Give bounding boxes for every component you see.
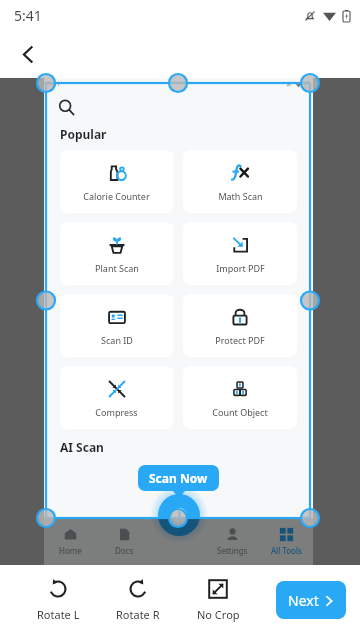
staticText: Next xyxy=(288,591,319,610)
staticText: Popular xyxy=(60,126,107,142)
staticText: 5:41 xyxy=(14,6,42,25)
staticText: Settings xyxy=(217,545,248,556)
button[interactable]: Home xyxy=(44,517,97,565)
staticText: Scan Now xyxy=(149,470,208,486)
button[interactable]: Count Object xyxy=(183,366,297,429)
button[interactable]: Scan xyxy=(158,494,200,536)
staticText: All Tools xyxy=(271,545,302,556)
button[interactable]: No Crop xyxy=(178,578,258,622)
staticText: AI Scan xyxy=(60,439,104,455)
staticText: Plant Scan xyxy=(95,262,139,274)
button[interactable]: Import PDF xyxy=(183,222,297,285)
button[interactable]: Math Scan xyxy=(183,150,297,213)
button[interactable]: Docs xyxy=(97,517,151,565)
staticText: No Crop xyxy=(197,607,240,622)
staticText: Docs xyxy=(115,545,134,556)
button[interactable]: Compress xyxy=(60,366,173,429)
button[interactable]: Settings xyxy=(205,517,259,565)
button[interactable]: Calorie Counter xyxy=(60,150,173,213)
button[interactable]: Protect PDF xyxy=(183,294,297,357)
staticText: Calorie Counter xyxy=(83,190,150,202)
button[interactable]: Rotate R xyxy=(98,578,178,622)
staticText: Import PDF xyxy=(216,262,265,274)
staticText: Math Scan xyxy=(218,190,263,202)
staticText: Protect PDF xyxy=(215,334,265,346)
button[interactable]: Search xyxy=(58,92,313,122)
button[interactable]: Next xyxy=(276,581,346,619)
button[interactable]: All Tools xyxy=(259,517,313,565)
staticText: Rotate L xyxy=(37,607,80,622)
button[interactable]: Scan Now xyxy=(149,470,208,486)
staticText: Scan ID xyxy=(101,334,133,346)
staticText: 5:41 xyxy=(48,80,60,88)
button[interactable]: Plant Scan xyxy=(60,222,173,285)
button[interactable]: Back xyxy=(0,30,56,78)
staticText: Count Object xyxy=(212,406,268,418)
staticText: Home xyxy=(59,545,82,556)
staticText: Compress xyxy=(95,406,138,418)
staticText: Rotate R xyxy=(116,607,160,622)
button[interactable]: Crop region xyxy=(34,71,322,530)
button[interactable]: Rotate L xyxy=(18,578,98,622)
button[interactable]: Scan ID xyxy=(60,294,173,357)
